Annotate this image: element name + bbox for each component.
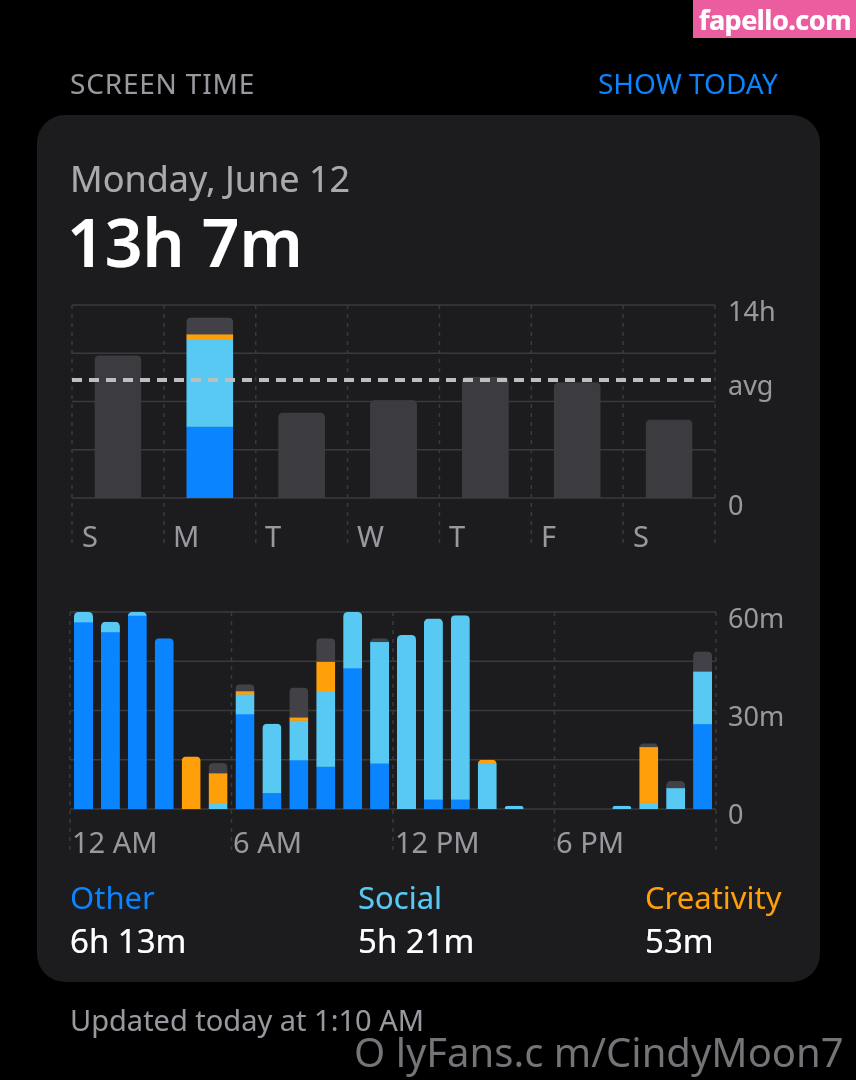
staticText: Creativity xyxy=(645,876,782,918)
button[interactable]: SHOW TODAY xyxy=(598,64,778,102)
staticText: W xyxy=(357,516,384,555)
button[interactable]: fapello.com xyxy=(693,0,856,38)
staticText: 14h xyxy=(728,292,776,329)
staticText: SCREEN TIME xyxy=(70,64,256,102)
staticText: 0 xyxy=(728,795,744,832)
staticText: T xyxy=(449,516,466,555)
staticText: 6 PM xyxy=(556,822,624,861)
staticText: S xyxy=(633,516,649,555)
staticText: Updated today at 1:10 AM xyxy=(70,1000,424,1039)
staticText: 60m xyxy=(728,599,785,636)
staticText: SHOW TODAY xyxy=(598,64,778,102)
staticText: S xyxy=(82,516,98,555)
staticText: 6h 13m xyxy=(70,918,187,963)
staticText: O lyFans.c m/CindyMoon7 xyxy=(354,1024,844,1078)
staticText: 30m xyxy=(728,697,785,734)
button[interactable] xyxy=(37,115,820,982)
staticText: 6 AM xyxy=(233,822,302,861)
staticText: 53m xyxy=(645,918,714,963)
staticText: 12 PM xyxy=(395,822,480,861)
staticText: T xyxy=(265,516,282,555)
staticText: 12 AM xyxy=(72,822,158,861)
staticText: Social xyxy=(358,876,443,918)
staticText: Monday, June 12 xyxy=(70,154,351,203)
staticText: 5h 21m xyxy=(358,918,475,963)
staticText: F xyxy=(541,516,557,555)
staticText: fapello.com xyxy=(699,1,851,38)
staticText: Other xyxy=(70,876,155,918)
staticText: avg xyxy=(728,366,774,403)
staticText: 0 xyxy=(728,486,744,523)
staticText: M xyxy=(173,516,200,555)
staticText: 13h 7m xyxy=(67,196,303,286)
